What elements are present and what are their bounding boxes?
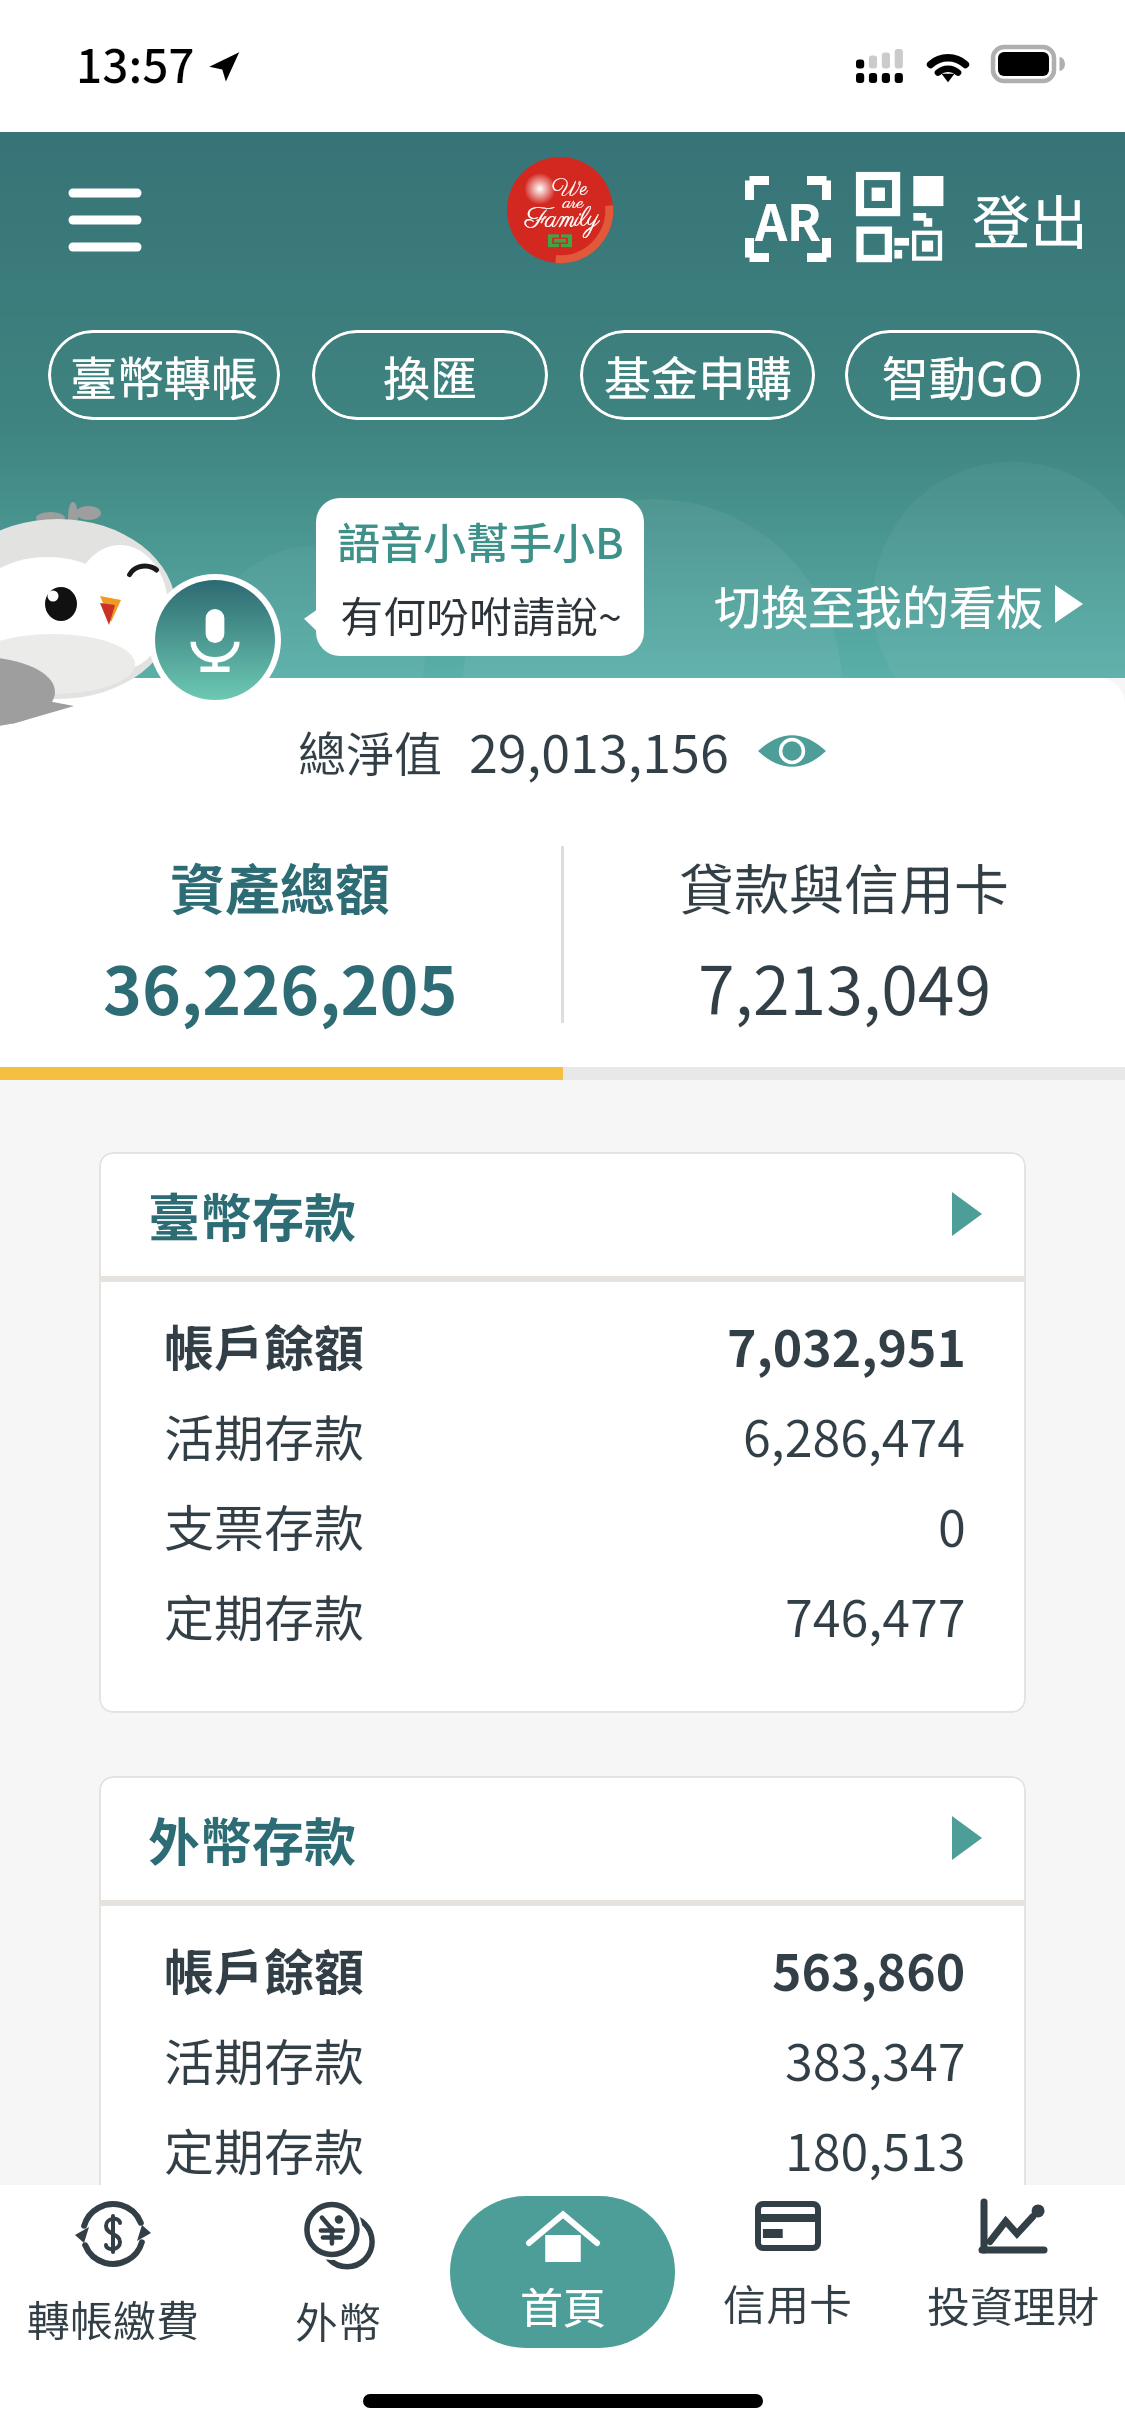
staticText: 總淨值	[298, 716, 443, 786]
button[interactable]: 外幣	[225, 2185, 450, 2385]
button[interactable]: Toggle balance visibility	[757, 726, 827, 776]
staticText: 基金申購	[604, 341, 792, 409]
staticText: 帳戶餘額	[164, 1933, 364, 2005]
button[interactable]: 信用卡	[675, 2185, 900, 2385]
button[interactable]: 臺幣轉帳	[48, 330, 280, 420]
button[interactable]: AR	[728, 156, 848, 282]
button[interactable]: 轉帳繳費	[0, 2185, 225, 2385]
staticText: 換匯	[383, 341, 477, 409]
button[interactable]: 登出	[958, 156, 1125, 282]
button[interactable]: 外幣存款	[99, 1776, 1026, 1900]
button[interactable]: 投資理財	[900, 2185, 1125, 2385]
staticText: 投資理財	[927, 2273, 1099, 2335]
staticText: 語音小幫手小B	[337, 509, 624, 571]
staticText: 帳戶餘額	[164, 1309, 364, 1381]
staticText: 383,347	[785, 2023, 966, 2095]
staticText: 563,860	[772, 1933, 966, 2005]
staticText: 0	[938, 1489, 966, 1561]
button[interactable]: 基金申購	[580, 330, 815, 420]
button[interactable]: 貸款與信用卡	[564, 846, 1125, 1041]
staticText: Family	[525, 201, 600, 238]
staticText: 支票存款	[164, 1489, 364, 1561]
button[interactable]: 語音小幫手小B	[316, 498, 644, 656]
button[interactable]: 資產總額	[0, 846, 561, 1041]
staticText: 臺幣存款	[148, 1177, 357, 1252]
staticText: 6,286,474	[743, 1399, 966, 1471]
staticText: 13:57	[76, 30, 195, 97]
staticText: 信用卡	[723, 2271, 852, 2333]
staticText: 首頁	[520, 2274, 606, 2336]
button[interactable]: 換匯	[312, 330, 548, 420]
staticText: 活期存款	[164, 2023, 364, 2095]
staticText: 轉帳繳費	[27, 2287, 199, 2349]
staticText: 有何吩咐請說~	[340, 583, 622, 645]
staticText: We	[552, 175, 588, 204]
staticText: 活期存款	[164, 1399, 364, 1471]
button[interactable]: 智動GO	[845, 330, 1080, 420]
staticText: 貸款與信用卡	[679, 846, 1010, 926]
staticText: are	[563, 191, 584, 217]
staticText: 資產總額	[170, 846, 391, 926]
staticText: 180,513	[785, 2113, 966, 2185]
staticText: 7,213,049	[698, 938, 992, 1034]
staticText: 29,013,156	[469, 713, 729, 788]
staticText: 智動GO	[882, 341, 1044, 409]
staticText: 登出	[972, 177, 1089, 261]
button[interactable]: 首頁	[450, 2196, 675, 2348]
staticText: 切換至我的看板	[714, 570, 1043, 638]
button[interactable]: Menu	[42, 156, 168, 282]
staticText: AR	[755, 183, 822, 255]
staticText: 36,226,205	[103, 938, 458, 1034]
staticText: 定期存款	[164, 2113, 364, 2185]
staticText: 外幣	[295, 2289, 381, 2351]
button[interactable]: QR code scanner	[848, 156, 958, 282]
staticText: 臺幣轉帳	[70, 341, 258, 409]
button[interactable]: 切換至我的看板	[706, 562, 1091, 646]
button[interactable]: Voice assistant	[155, 580, 275, 700]
staticText: 外幣存款	[148, 1801, 357, 1876]
button[interactable]: 臺幣存款	[99, 1152, 1026, 1276]
staticText: 定期存款	[164, 1579, 364, 1651]
staticText: 7,032,951	[727, 1309, 966, 1381]
staticText: 746,477	[785, 1579, 966, 1651]
